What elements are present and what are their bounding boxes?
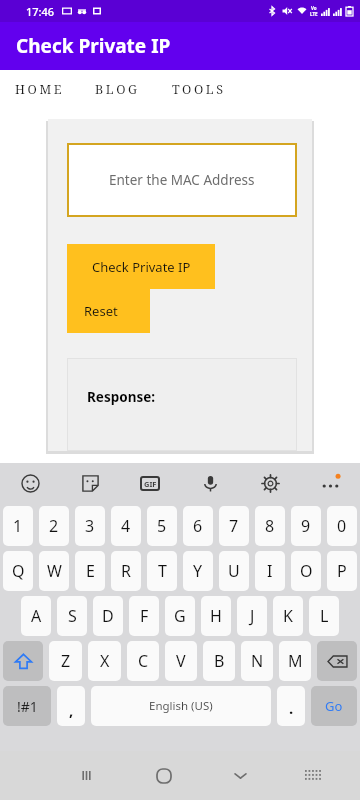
button[interactable]: 6	[183, 506, 213, 546]
staticText: 2	[49, 515, 59, 537]
button[interactable]: J	[237, 596, 267, 636]
staticText: 4	[121, 515, 131, 537]
staticText: 6	[193, 515, 203, 537]
button[interactable]: 1	[3, 506, 33, 546]
staticText: !#1	[17, 697, 38, 716]
button[interactable]: Settings	[240, 463, 300, 503]
staticText: M	[288, 650, 303, 672]
staticText: D	[102, 605, 114, 627]
button[interactable]: X	[88, 641, 121, 681]
staticText: Go	[325, 697, 343, 715]
button[interactable]: TOOLS	[170, 74, 228, 105]
button[interactable]: 0	[327, 506, 357, 546]
button[interactable]: Stickers	[60, 463, 120, 503]
staticText: T	[158, 560, 167, 582]
button[interactable]: Recent apps	[48, 751, 125, 800]
button[interactable]: O	[291, 551, 321, 591]
staticText: K	[283, 605, 293, 627]
staticText: 17:46	[26, 4, 55, 19]
button[interactable]: Shift	[3, 641, 43, 681]
staticText: 8	[265, 515, 275, 537]
button[interactable]: R	[111, 551, 141, 591]
button[interactable]: 8	[255, 506, 285, 546]
button[interactable]: L	[309, 596, 339, 636]
button[interactable]: 2	[39, 506, 69, 546]
staticText: J	[250, 605, 255, 627]
staticText: Check Private IP	[92, 258, 191, 276]
staticText: BLOG	[95, 81, 140, 98]
button[interactable]: D	[93, 596, 123, 636]
button[interactable]: Emoji	[0, 463, 60, 503]
button[interactable]: Hide keyboard	[202, 751, 279, 800]
button[interactable]: Y	[183, 551, 213, 591]
staticText: LTE	[310, 11, 318, 17]
staticText: 3	[85, 515, 95, 537]
staticText: 5	[157, 515, 167, 537]
button[interactable]: Go	[311, 686, 357, 726]
button[interactable]: Reset	[67, 289, 150, 333]
staticText: B	[214, 650, 225, 672]
button[interactable]: C	[127, 641, 159, 681]
staticText: Vo	[311, 5, 317, 11]
button[interactable]: W	[39, 551, 69, 591]
button[interactable]: HOME	[13, 74, 67, 105]
staticText: 1	[13, 515, 23, 537]
staticText: L	[320, 605, 329, 627]
staticText: Response:	[87, 388, 156, 406]
staticText: 9	[301, 515, 311, 537]
button[interactable]: T	[147, 551, 177, 591]
staticText: N	[251, 650, 264, 672]
staticText: I	[267, 560, 273, 582]
staticText: Enter the MAC Address	[109, 171, 255, 189]
button[interactable]: N	[241, 641, 273, 681]
button[interactable]: E	[75, 551, 105, 591]
button[interactable]: Q	[3, 551, 33, 591]
button[interactable]: BLOG	[93, 74, 142, 105]
staticText: English (US)	[149, 698, 213, 714]
staticText: W	[47, 560, 62, 582]
button[interactable]: H	[201, 596, 231, 636]
button[interactable]: P	[327, 551, 357, 591]
staticText: G	[174, 605, 186, 627]
staticText: 0	[337, 515, 347, 537]
button[interactable]: 9	[291, 506, 321, 546]
button[interactable]: 7	[219, 506, 249, 546]
button[interactable]: Enter the MAC Address	[67, 143, 297, 217]
button[interactable]: English (US)	[91, 686, 271, 726]
button[interactable]: B	[203, 641, 235, 681]
button[interactable]: Z	[49, 641, 82, 681]
button[interactable]: K	[273, 596, 303, 636]
button[interactable]: A	[21, 596, 51, 636]
button[interactable]: G	[165, 596, 195, 636]
staticText: H	[210, 605, 222, 627]
staticText: HOME	[15, 81, 65, 98]
button[interactable]: S	[57, 596, 87, 636]
staticText: Y	[193, 560, 203, 582]
staticText: O	[300, 560, 313, 582]
button[interactable]: M	[279, 641, 311, 681]
staticText: ,	[69, 700, 74, 720]
button[interactable]: V	[165, 641, 197, 681]
button[interactable]: Switch keyboard	[279, 751, 345, 800]
button[interactable]: U	[219, 551, 249, 591]
button[interactable]: F	[129, 596, 159, 636]
button[interactable]: ,	[57, 686, 85, 726]
button[interactable]: Backspace	[317, 641, 357, 681]
button[interactable]: Voice input	[180, 463, 240, 503]
button[interactable]: Check Private IP	[67, 244, 215, 289]
staticText: GIF	[144, 479, 157, 489]
button[interactable]: 5	[147, 506, 177, 546]
button[interactable]: I	[255, 551, 285, 591]
staticText: 7	[229, 515, 239, 537]
button[interactable]: !#1	[3, 686, 51, 726]
button[interactable]: 3	[75, 506, 105, 546]
staticText: V	[176, 650, 186, 672]
button[interactable]: .	[277, 686, 305, 726]
button[interactable]: More options	[300, 463, 360, 503]
button[interactable]: 4	[111, 506, 141, 546]
staticText: F	[140, 605, 149, 627]
staticText: E	[86, 560, 95, 582]
button[interactable]: Home	[125, 751, 202, 800]
staticText: TOOLS	[172, 81, 226, 98]
button[interactable]: GIF	[120, 463, 180, 503]
